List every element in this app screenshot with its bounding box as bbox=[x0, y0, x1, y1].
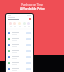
button[interactable] bbox=[8, 36, 31, 42]
staticText: Purchase on Time bbox=[21, 3, 43, 7]
button[interactable] bbox=[23, 22, 26, 27]
button[interactable] bbox=[8, 60, 31, 66]
button[interactable] bbox=[13, 22, 16, 27]
button[interactable] bbox=[27, 22, 30, 27]
button[interactable] bbox=[9, 22, 12, 27]
button[interactable] bbox=[8, 54, 31, 60]
button[interactable] bbox=[18, 22, 21, 27]
button[interactable] bbox=[8, 30, 31, 36]
button[interactable] bbox=[8, 48, 31, 54]
button[interactable] bbox=[8, 66, 31, 72]
staticText: Affordable Price bbox=[20, 7, 45, 11]
button[interactable] bbox=[8, 42, 31, 48]
